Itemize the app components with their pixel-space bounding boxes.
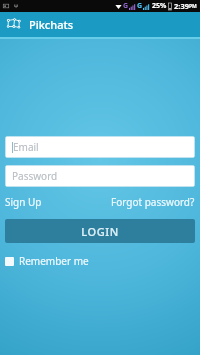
- button[interactable]: LOGIN: [5, 219, 195, 243]
- button[interactable]: Sign Up: [5, 194, 42, 210]
- staticText: Email: [13, 140, 39, 154]
- staticText: Pikchats: [29, 17, 73, 32]
- button[interactable]: Pikchats logo: [4, 15, 23, 34]
- staticText: Forgot password?: [111, 195, 195, 209]
- button[interactable]: Forgot password?: [111, 194, 195, 210]
- staticText: Sign Up: [5, 195, 42, 209]
- staticText: PM: [189, 3, 197, 10]
- button[interactable]: Remember me: [5, 252, 95, 270]
- staticText: Remember me: [19, 254, 89, 268]
- staticText: Password: [12, 169, 58, 183]
- staticText: 25%: [152, 1, 167, 11]
- staticText: LOGIN: [81, 224, 119, 239]
- staticText: 2:39: [174, 1, 189, 11]
- staticText: G: [123, 1, 129, 11]
- button[interactable]: Email: [5, 136, 195, 158]
- staticText: G: [137, 1, 143, 11]
- button[interactable]: Password: [5, 165, 195, 187]
